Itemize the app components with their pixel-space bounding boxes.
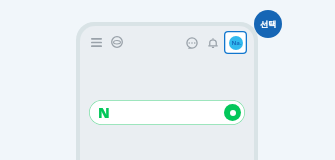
button[interactable]: Notifications <box>204 34 221 51</box>
staticText: Na. <box>231 39 242 47</box>
staticText: N <box>98 103 110 122</box>
button[interactable]: Voice search <box>224 104 241 121</box>
button[interactable]: 선택 <box>254 10 282 38</box>
button[interactable]: Chat <box>183 34 200 51</box>
button[interactable]: N <box>89 100 245 125</box>
button[interactable]: Menu <box>87 33 105 51</box>
button[interactable]: Profile, selected <box>224 31 247 54</box>
button[interactable]: Pay <box>108 33 126 51</box>
staticText: 선택 <box>260 19 276 29</box>
